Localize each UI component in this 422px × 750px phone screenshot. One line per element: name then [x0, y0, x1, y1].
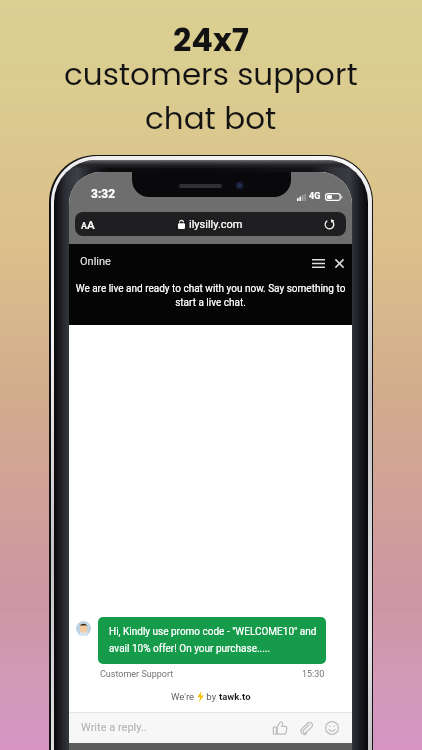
staticText: Hi, Kindly use promo code - "WELCOME10" …	[109, 626, 320, 655]
button[interactable]: Reload	[322, 217, 336, 231]
button[interactable]: Emoji	[322, 718, 342, 738]
staticText: Online	[80, 255, 111, 268]
button[interactable]: Like	[270, 718, 290, 738]
staticText: 3:32	[91, 187, 116, 201]
staticText: by	[204, 691, 219, 702]
button[interactable]: Menu	[308, 252, 328, 274]
staticText: Write a reply..	[81, 721, 147, 734]
staticText: 15:30	[302, 669, 325, 680]
button[interactable]: A	[75, 212, 346, 236]
staticText: We're	[171, 691, 197, 702]
staticText: A	[81, 221, 87, 232]
button[interactable]: Close	[329, 252, 349, 274]
staticText: tawk.to	[219, 691, 251, 702]
staticText: 24x7	[173, 17, 249, 62]
staticText: 4G	[309, 191, 321, 202]
staticText: ilysilly.com	[189, 218, 243, 231]
staticText: A	[87, 218, 95, 231]
staticText: Customer Support	[100, 669, 174, 680]
staticText: customers support	[64, 52, 358, 95]
staticText: We are live and ready to chat with you n…	[75, 283, 346, 309]
staticText: chat bot	[145, 96, 277, 139]
button[interactable]: Attach file	[296, 718, 316, 738]
